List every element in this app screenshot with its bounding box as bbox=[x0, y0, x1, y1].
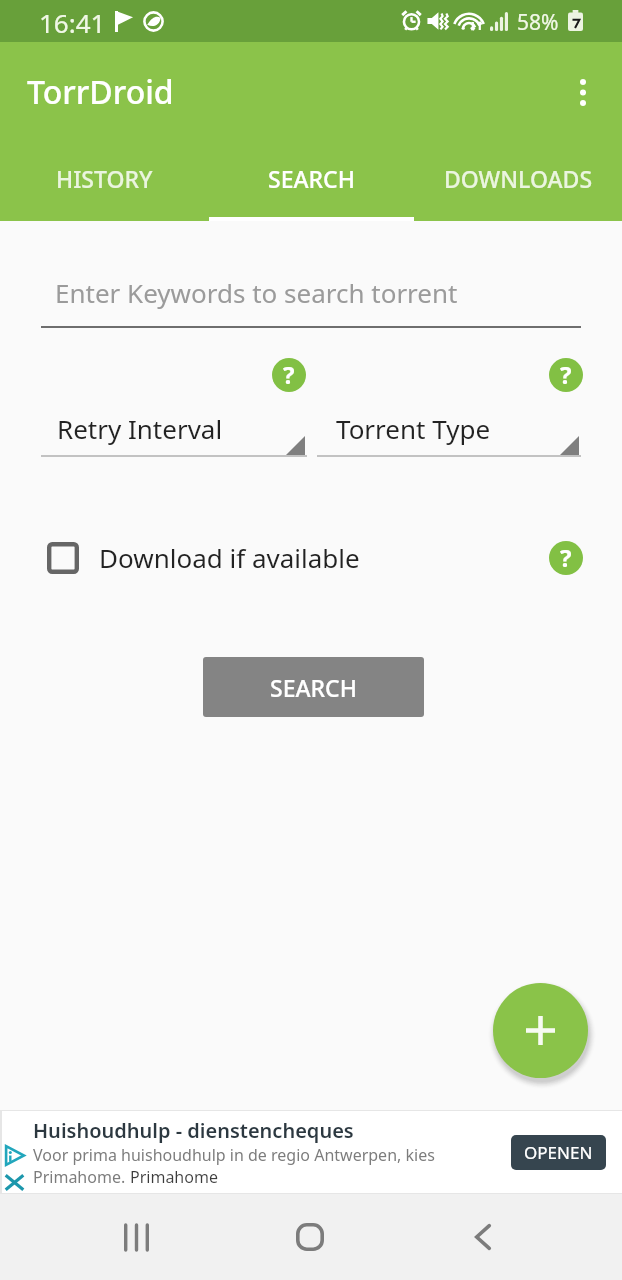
staticText: Primahome bbox=[130, 1166, 218, 1188]
button[interactable]: OPENEN bbox=[511, 1135, 606, 1170]
staticText: SEARCH bbox=[270, 672, 357, 703]
staticText: Enter Keywords to search torrent bbox=[55, 275, 458, 310]
staticText: Download if available bbox=[99, 540, 360, 575]
staticText: Huishoudhulp - dienstencheques bbox=[33, 1117, 354, 1144]
staticText: HISTORY bbox=[56, 163, 153, 194]
staticText: 16:41 bbox=[39, 5, 106, 40]
button[interactable]: Add bbox=[493, 983, 588, 1078]
button[interactable]: Recent apps bbox=[92, 1204, 180, 1270]
button[interactable]: Download if available bbox=[47, 540, 360, 575]
button[interactable]: SEARCH bbox=[203, 657, 424, 717]
staticText: SEARCH bbox=[268, 163, 355, 194]
button[interactable]: Back bbox=[439, 1204, 527, 1270]
button[interactable]: Help bbox=[549, 541, 583, 575]
staticText: OPENEN bbox=[524, 1141, 593, 1164]
button[interactable]: DOWNLOADS bbox=[415, 149, 622, 221]
button[interactable]: HISTORY bbox=[0, 149, 208, 221]
staticText: Voor prima huishoudhulp in de regio Antw… bbox=[33, 1144, 435, 1166]
button[interactable]: SEARCH bbox=[208, 149, 415, 221]
staticText: DOWNLOADS bbox=[444, 163, 593, 194]
button[interactable]: Help bbox=[549, 358, 583, 392]
staticText: 58% bbox=[517, 8, 559, 37]
staticText: ? bbox=[560, 541, 572, 574]
staticText: Torrent Type bbox=[336, 411, 491, 446]
button[interactable]: More options bbox=[555, 64, 611, 120]
staticText: Primahome. bbox=[33, 1166, 130, 1188]
button[interactable]: Retry Interval bbox=[41, 399, 307, 434]
button[interactable]: Home bbox=[266, 1204, 354, 1270]
staticText: Retry Interval bbox=[57, 411, 223, 446]
staticText: ? bbox=[283, 358, 295, 391]
staticText: TorrDroid bbox=[27, 70, 174, 114]
button[interactable]: Torrent Type bbox=[317, 399, 581, 434]
button[interactable]: Help bbox=[272, 358, 306, 392]
staticText: ? bbox=[560, 358, 572, 391]
